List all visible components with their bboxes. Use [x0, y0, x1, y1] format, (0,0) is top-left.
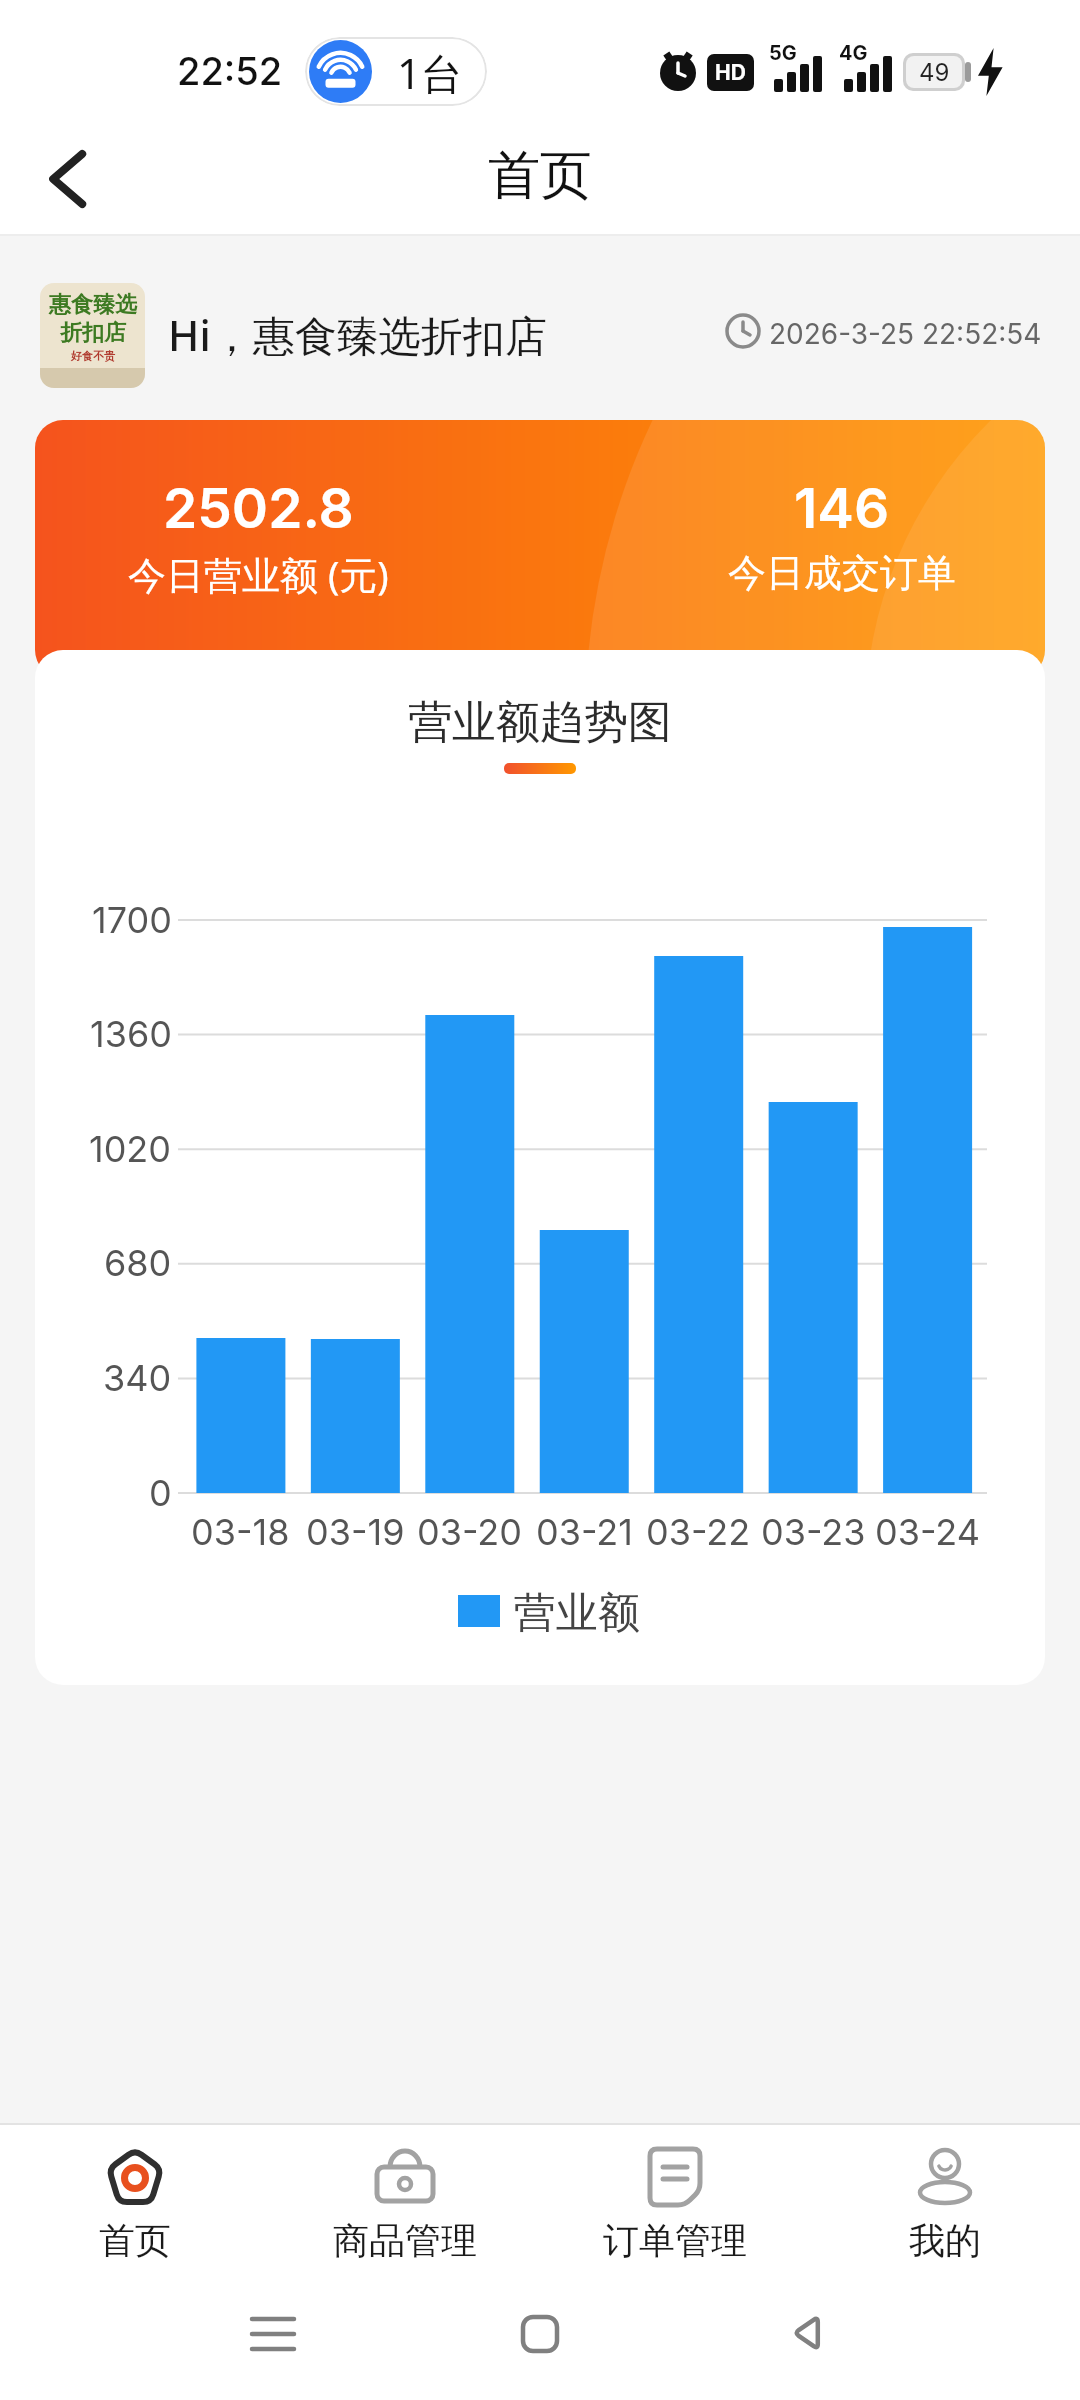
- staticText: Hi，惠食臻选折扣店: [168, 306, 547, 360]
- staticText: 22:52: [177, 48, 283, 94]
- staticText: 146: [794, 475, 890, 542]
- staticText: 03-20: [417, 1510, 522, 1554]
- staticText: 今日营业额 (元): [128, 548, 389, 598]
- staticText: 03-21: [536, 1510, 633, 1554]
- staticText: 营业额趋势图: [408, 695, 672, 750]
- staticText: 2502.8: [163, 475, 354, 542]
- staticText: 今日成交订单: [728, 549, 956, 597]
- button[interactable]: 首页: [0, 2125, 270, 2291]
- staticText: 惠食臻选: [49, 291, 137, 319]
- staticText: 折扣店: [60, 319, 126, 347]
- staticText: 03-22: [646, 1510, 751, 1554]
- staticText: 340: [103, 1356, 172, 1400]
- staticText: 1台: [397, 44, 464, 98]
- button[interactable]: [789, 2313, 829, 2353]
- staticText: 49: [919, 58, 950, 87]
- staticText: 1700: [92, 898, 172, 942]
- staticText: 1360: [90, 1012, 172, 1056]
- staticText: 我的: [909, 2218, 981, 2263]
- staticText: HD: [715, 60, 746, 85]
- staticText: 首页: [488, 143, 592, 209]
- staticText: 03-24: [875, 1510, 980, 1554]
- staticText: 4G: [839, 41, 868, 65]
- button[interactable]: 订单管理: [540, 2125, 810, 2291]
- staticText: 商品管理: [333, 2218, 477, 2263]
- staticText: 0: [149, 1471, 172, 1515]
- staticText: 首页: [99, 2218, 171, 2263]
- staticText: 营业额: [514, 1587, 640, 1635]
- button[interactable]: [521, 2315, 559, 2353]
- staticText: 03-18: [191, 1510, 290, 1554]
- button[interactable]: 我的: [810, 2125, 1080, 2291]
- staticText: 好食不贵: [71, 349, 115, 363]
- staticText: 5G: [769, 41, 797, 65]
- staticText: 2026-3-25 22:52:54: [769, 317, 1042, 351]
- staticText: 订单管理: [603, 2218, 747, 2263]
- staticText: 03-23: [761, 1510, 866, 1554]
- button[interactable]: 惠食臻选: [40, 283, 145, 388]
- button[interactable]: 商品管理: [270, 2125, 540, 2291]
- staticText: 03-19: [306, 1510, 405, 1554]
- staticText: 1020: [89, 1127, 172, 1171]
- button[interactable]: [36, 146, 102, 212]
- staticText: 680: [104, 1241, 172, 1285]
- button[interactable]: 2502.8: [35, 420, 1045, 678]
- button[interactable]: [250, 2311, 296, 2357]
